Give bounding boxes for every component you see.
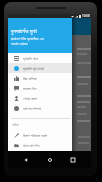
staticText: ব্যাক আপ নিন <box>23 143 40 148</box>
staticText: মতামত দিন <box>23 86 37 91</box>
staticText: বুকমার্কের মুখা <box>11 27 37 35</box>
staticText: 10:58 <box>82 14 90 18</box>
button[interactable]: সূত্রাবলি পাতা <box>8 53 72 63</box>
button[interactable]: সূত্রাবলি সূত্র ব্যাখ্যা <box>8 63 72 73</box>
button[interactable]: ব্যাক আপ নিন <box>8 140 72 150</box>
staticText: বিভাগ পরিবর্তন করুন <box>23 133 48 138</box>
staticText: সেটিংস <box>12 123 19 126</box>
button[interactable]: বুকমার্কের মুখা <box>8 14 72 53</box>
button[interactable]: Home <box>44 154 56 166</box>
staticText: শেয়ার করুন <box>23 96 37 101</box>
button[interactable]: প্রিয় তালিকা <box>8 73 72 83</box>
button[interactable]: Recent apps <box>67 154 79 166</box>
staticText: সূত্রাবলি পাতা <box>23 56 39 61</box>
button[interactable]: বিভাগ পরিবর্তন করুন <box>8 130 72 140</box>
staticText: সূত্রাবলি সূত্র ব্যাখ্যা <box>23 66 45 71</box>
staticText: হাজারো গণিত সূত্রাবলীসহ এবং অন্যান্য সহা… <box>11 36 51 46</box>
button[interactable]: অ্যাপের সম্পর্কে <box>8 103 72 113</box>
button[interactable]: মতামত দিন <box>8 83 72 93</box>
staticText: প্রিয় তালিকা <box>23 76 37 81</box>
button[interactable]: Back <box>20 154 32 166</box>
staticText: অ্যাপের সম্পর্কে <box>23 106 41 111</box>
button[interactable]: শেয়ার করুন <box>8 93 72 103</box>
